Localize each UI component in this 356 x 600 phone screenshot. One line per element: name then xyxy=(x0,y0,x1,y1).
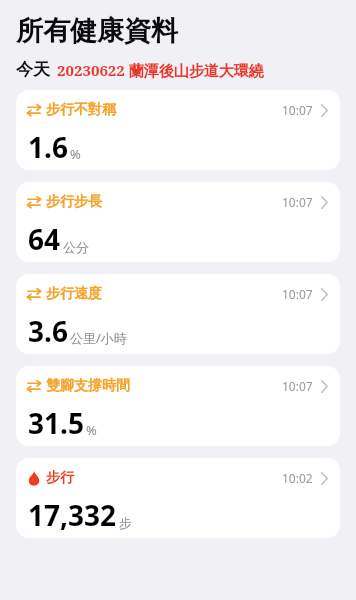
other: 檢視詳細資料 xyxy=(321,380,328,393)
staticText: 31.5 xyxy=(28,404,84,442)
staticText: 步行不對稱 xyxy=(46,101,116,119)
other: 檢視詳細資料 xyxy=(321,288,328,301)
staticText: 10:07 xyxy=(282,194,313,210)
staticText: 步行 xyxy=(46,469,74,487)
button[interactable]: 步行步長 xyxy=(16,182,340,262)
staticText: 步行速度 xyxy=(46,285,102,303)
staticText: 雙腳支撐時間 xyxy=(46,377,130,395)
other: 檢視詳細資料 xyxy=(321,472,328,485)
staticText: 10:07 xyxy=(282,286,313,302)
staticText: 步行步長 xyxy=(46,193,102,211)
staticText: 3.6 xyxy=(28,312,68,350)
staticText: 步 xyxy=(119,515,132,531)
button[interactable]: 步行 xyxy=(16,458,340,538)
staticText: 公分 xyxy=(63,239,89,255)
staticText: 今天 xyxy=(16,59,50,80)
staticText: 10:07 xyxy=(282,102,313,118)
staticText: 17,332 xyxy=(28,496,117,534)
other: 檢視詳細資料 xyxy=(321,196,328,209)
staticText: 64 xyxy=(28,220,61,258)
button[interactable]: 步行速度 xyxy=(16,274,340,354)
staticText: 所有健康資料 xyxy=(16,14,178,48)
staticText: 公里/小時 xyxy=(70,329,127,347)
staticText: % xyxy=(86,421,97,439)
staticText: 10:02 xyxy=(282,470,313,486)
other: 檢視詳細資料 xyxy=(321,104,328,117)
button[interactable]: 雙腳支撐時間 xyxy=(16,366,340,446)
staticText: 1.6 xyxy=(28,128,68,166)
staticText: % xyxy=(70,145,81,163)
button[interactable]: 步行不對稱 xyxy=(16,90,340,170)
staticText: 20230622 蘭潭後山步道大環繞 xyxy=(57,60,264,80)
staticText: 10:07 xyxy=(282,378,313,394)
